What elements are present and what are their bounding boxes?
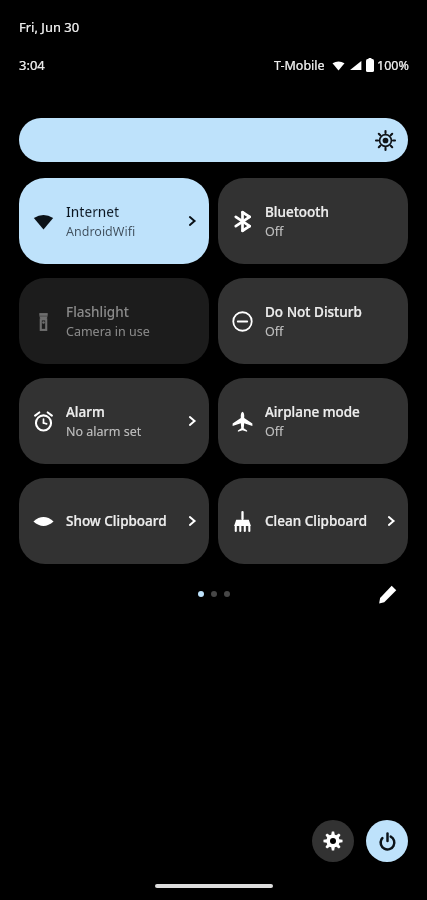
staticText: Internet (66, 203, 120, 221)
staticText: Clean Clipboard (265, 512, 368, 530)
button[interactable]: Alarm (19, 378, 209, 464)
button[interactable]: Internet (19, 178, 209, 264)
staticText: Do Not Disturb (265, 303, 362, 321)
staticText: Off (265, 223, 284, 240)
button[interactable]: Flashlight (19, 278, 209, 364)
staticText: Bluetooth (265, 203, 329, 221)
staticText: Fri, Jun 30 (19, 18, 80, 36)
button[interactable]: Clean Clipboard (218, 478, 408, 564)
button[interactable]: Brightness (19, 118, 408, 162)
staticText: Off (265, 323, 284, 340)
staticText: Flashlight (66, 303, 129, 321)
staticText: AndroidWifi (66, 223, 136, 240)
staticText: Show Clipboard (66, 512, 167, 530)
staticText: Airplane mode (265, 403, 360, 421)
button[interactable]: Airplane mode (218, 378, 408, 464)
button[interactable]: Settings (312, 820, 354, 862)
staticText: No alarm set (66, 423, 142, 440)
staticText: Alarm (66, 403, 105, 421)
button[interactable]: Bluetooth (218, 178, 408, 264)
button[interactable]: Do Not Disturb (218, 278, 408, 364)
button[interactable]: Edit tiles (371, 578, 403, 610)
staticText: 3:04 (19, 56, 45, 74)
staticText: T-Mobile (274, 57, 325, 74)
staticText: Off (265, 423, 284, 440)
staticText: 100% (377, 57, 409, 74)
button[interactable]: Power (366, 820, 408, 862)
staticText: Camera in use (66, 323, 150, 340)
button[interactable]: Show Clipboard (19, 478, 209, 564)
